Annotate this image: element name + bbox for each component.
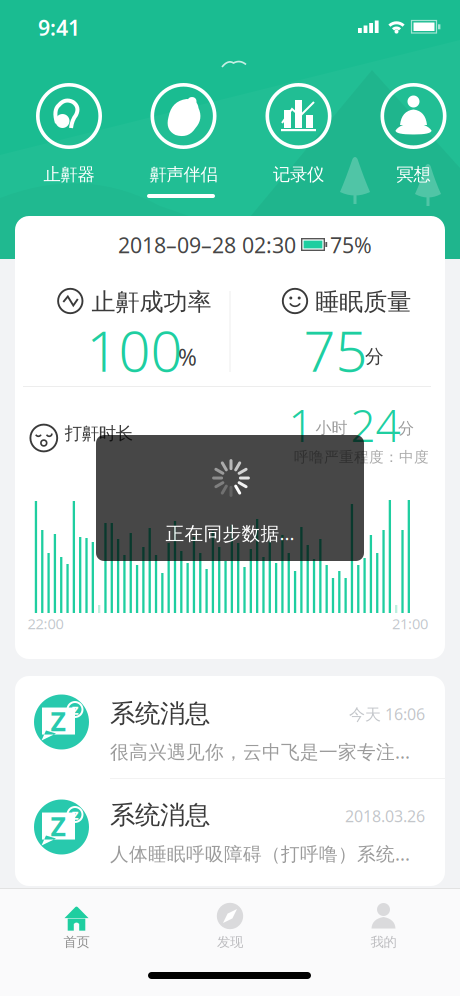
staticText: z	[71, 804, 78, 824]
staticText: 止鼾器	[43, 164, 94, 185]
staticText: %	[178, 342, 197, 372]
staticText: 21:00	[392, 614, 428, 633]
button[interactable]	[366, 77, 460, 202]
button[interactable]: 首页	[16, 890, 136, 950]
button[interactable]: Z	[15, 779, 445, 883]
staticText: 正在同步数据...	[165, 521, 294, 545]
staticText: 75%	[330, 231, 372, 259]
staticText: 首页	[63, 934, 89, 950]
staticText: 鼾声伴侣	[149, 164, 217, 185]
button[interactable]: Z	[15, 676, 445, 778]
staticText: 止鼾成功率	[91, 287, 211, 317]
staticText: 2018–09–28 02:30	[118, 231, 296, 259]
button[interactable]	[22, 77, 116, 202]
staticText: 我的	[370, 934, 396, 950]
staticText: 系统消息	[110, 799, 210, 830]
staticText: 记录仪	[273, 164, 324, 185]
staticText: 发现	[217, 934, 243, 950]
staticText: 睡眠质量	[315, 287, 411, 317]
button[interactable]: 发现	[170, 890, 290, 950]
staticText: 分	[398, 419, 414, 438]
staticText: 分	[365, 345, 384, 368]
staticText: 1	[288, 396, 313, 454]
staticText: 2018.03.26	[345, 805, 425, 827]
button[interactable]: 我的	[323, 890, 443, 950]
staticText: 冥想	[396, 164, 430, 185]
staticText: 9:41	[38, 13, 80, 42]
staticText: 100	[86, 313, 182, 387]
staticText: 人体睡眠呼吸障碍（打呼噜）系统...	[110, 841, 410, 866]
staticText: 呼噜严重程度：中度	[294, 448, 429, 466]
staticText: 小时	[315, 418, 347, 438]
button[interactable]	[136, 77, 230, 202]
staticText: 75	[303, 313, 367, 387]
button[interactable]	[251, 77, 345, 202]
staticText: z	[71, 699, 78, 719]
staticText: 很高兴遇见你，云中飞是一家专注...	[110, 739, 410, 764]
staticText: 系统消息	[110, 698, 210, 729]
staticText: 24	[350, 396, 400, 454]
staticText: Z	[50, 808, 65, 844]
staticText: 今天 16:06	[349, 703, 425, 725]
staticText: 22:00	[27, 614, 63, 633]
staticText: Z	[50, 703, 65, 739]
staticText: 打鼾时长	[65, 423, 133, 444]
